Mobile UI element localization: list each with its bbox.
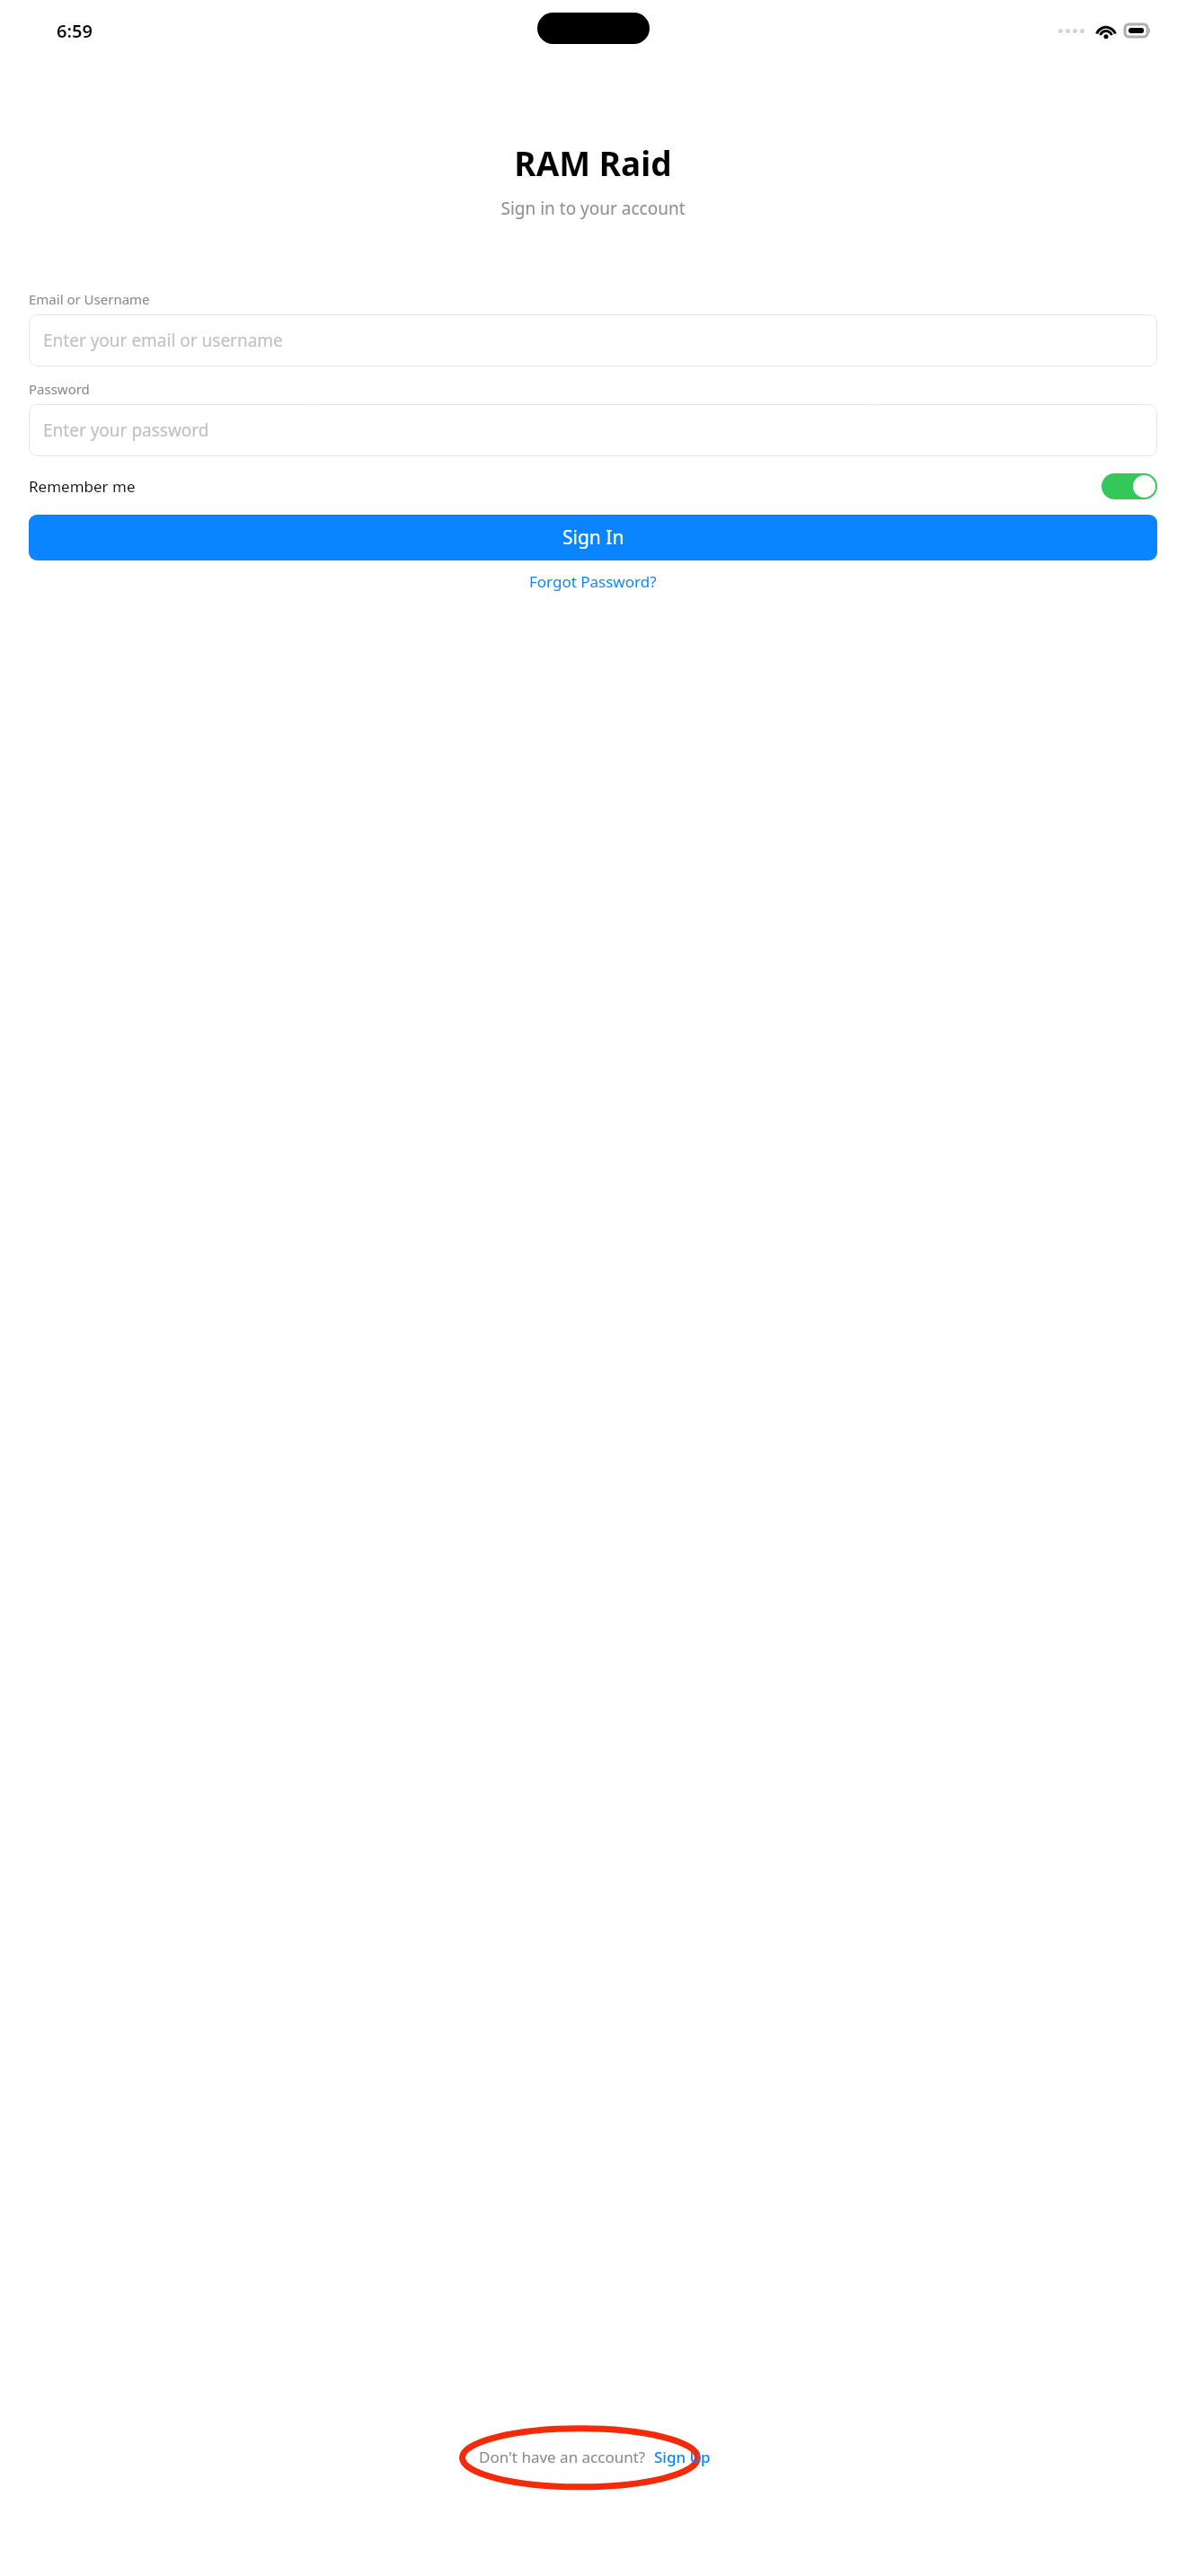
staticText: 6:59 [57, 19, 93, 43]
staticText: Remember me [29, 476, 136, 497]
staticText: Sign Up [654, 2447, 711, 2467]
button[interactable]: Remember me toggle [1102, 473, 1157, 499]
staticText: Sign in to your account [0, 197, 1186, 220]
button[interactable]: Enter your email or username [29, 314, 1157, 366]
staticText: RAM Raid [0, 140, 1186, 185]
button[interactable]: Sign In [29, 515, 1157, 560]
staticText: Forgot Password? [529, 571, 657, 592]
staticText: Don't have an account? [479, 2447, 646, 2467]
staticText: Enter your password [43, 419, 209, 442]
button[interactable]: Sign Up [654, 2447, 711, 2467]
staticText: Sign In [562, 525, 624, 551]
staticText: Email or Username [29, 290, 150, 308]
staticText: Enter your email or username [43, 329, 283, 352]
staticText: Password [29, 380, 90, 398]
button[interactable]: Enter your password [29, 404, 1157, 456]
button[interactable]: Remember me [29, 467, 1157, 505]
button[interactable]: Forgot Password? [29, 571, 1157, 592]
